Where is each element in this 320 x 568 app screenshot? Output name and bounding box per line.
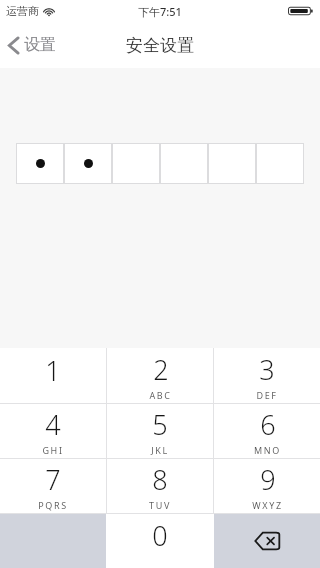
button[interactable]: 1 (0, 348, 106, 403)
button[interactable]: 2 (107, 348, 213, 403)
button[interactable]: 7 (0, 459, 106, 513)
button[interactable]: 4 (0, 404, 106, 458)
staticText: WXYZ (252, 499, 283, 511)
staticText: 5 (152, 406, 168, 443)
staticText: JKL (151, 444, 169, 456)
staticText: 设置 (24, 35, 56, 55)
staticText: 0 (152, 517, 168, 554)
staticText: 8 (152, 461, 168, 498)
staticText: 4 (45, 406, 61, 443)
staticText: DEF (256, 389, 278, 401)
staticText: PQRS (38, 499, 68, 511)
staticText: 3 (259, 351, 275, 388)
staticText: 下午7:51 (138, 4, 182, 19)
staticText: 6 (260, 406, 276, 443)
button[interactable]: 6 (214, 404, 320, 458)
staticText: GHI (42, 444, 64, 456)
button[interactable]: 8 (107, 459, 213, 513)
staticText: 1 (45, 352, 61, 389)
button[interactable]: 设置 (0, 29, 66, 61)
button[interactable]: 3 (214, 348, 320, 403)
button[interactable]: 0 (107, 514, 213, 568)
staticText: 安全设置 (126, 35, 194, 56)
staticText: ABC (149, 389, 172, 401)
staticText: 2 (153, 351, 169, 388)
staticText: 7 (45, 461, 61, 498)
staticText: 运营商 (6, 4, 39, 18)
button[interactable]: Delete (214, 514, 320, 568)
button[interactable]: 9 (214, 459, 320, 513)
staticText: 9 (260, 461, 276, 498)
staticText: MNO (254, 444, 281, 456)
button[interactable]: 5 (107, 404, 213, 458)
staticText: TUV (149, 499, 171, 511)
